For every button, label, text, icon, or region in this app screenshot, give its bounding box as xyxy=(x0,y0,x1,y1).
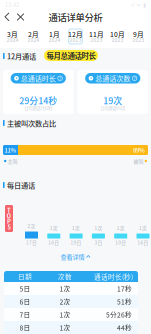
staticText: 2024 xyxy=(6,36,18,43)
staticText: 1次 xyxy=(139,225,147,231)
button[interactable]: 关闭 xyxy=(14,9,27,24)
staticText: 日均通话1分2秒 xyxy=(24,105,52,111)
staticText: 总通话时长 xyxy=(21,73,56,83)
staticText: 19日 xyxy=(71,239,82,246)
staticText: 12月通话 xyxy=(7,51,36,61)
staticText: 3日 xyxy=(94,239,102,246)
staticText: 主叫 xyxy=(6,157,17,165)
staticText: 通话详单分析 xyxy=(48,10,102,24)
staticText: 16日 xyxy=(48,239,59,246)
staticText: 1月 xyxy=(49,29,60,39)
staticText: 19次 xyxy=(103,94,122,107)
staticText: 10月 xyxy=(110,29,125,39)
staticText: 1次 xyxy=(59,323,70,332)
staticText: 2次 xyxy=(59,297,70,306)
staticText: P xyxy=(7,217,11,226)
staticText: 1次 xyxy=(50,225,58,231)
staticText: 1次 xyxy=(59,310,70,319)
staticText: 12月 xyxy=(68,29,83,39)
staticText: 每月总通话时长 xyxy=(46,50,95,61)
staticText: 1次 xyxy=(59,284,70,293)
staticText: 2023 xyxy=(69,36,81,43)
staticText: 次数 xyxy=(58,272,72,281)
staticText: 总通话次数 xyxy=(95,73,130,83)
button[interactable]: 查看详情 xyxy=(0,252,151,261)
staticText: 2024 xyxy=(27,36,39,43)
staticText: 11% xyxy=(4,146,16,154)
staticText: 2023 xyxy=(111,36,123,43)
staticText: 11月 xyxy=(89,29,104,39)
staticText: 2次 xyxy=(27,223,35,229)
button[interactable]: 返回 xyxy=(1,9,13,25)
staticText: 51秒 xyxy=(117,297,132,306)
button[interactable]: 1月 xyxy=(44,25,65,47)
staticText: 3月 xyxy=(7,29,18,39)
staticText: 29分14秒 xyxy=(19,94,57,107)
staticText: 17秒 xyxy=(117,284,132,293)
staticText: ? xyxy=(134,75,136,81)
staticText: 2月 xyxy=(28,29,39,39)
staticText: 7日 xyxy=(19,310,30,319)
staticText: 16日 xyxy=(137,239,148,246)
staticText: 1次 xyxy=(94,225,102,231)
staticText: 1次 xyxy=(72,225,80,231)
staticText: 查看详情 xyxy=(60,252,84,261)
staticText: 2023 xyxy=(132,36,144,43)
staticText: 日期 xyxy=(18,272,32,281)
staticText: 日均通话0.6次 xyxy=(100,105,125,111)
staticText: 17日 xyxy=(26,239,37,246)
staticText: 2024 xyxy=(48,36,60,43)
staticText: 89% xyxy=(133,146,145,154)
staticText: 主被叫次数占比 xyxy=(7,118,56,128)
staticText: 2023 xyxy=(90,36,102,43)
button[interactable]: 10月 xyxy=(107,25,128,47)
staticText: ıl ᯤ ▮ xyxy=(131,0,146,9)
button[interactable]: 3月 xyxy=(2,25,23,47)
staticText: 5日 xyxy=(19,284,30,293)
staticText: 10日 xyxy=(115,239,126,246)
button[interactable]: 11月 xyxy=(86,25,107,47)
staticText: 9月 xyxy=(133,29,144,39)
staticText: 13:42 xyxy=(5,0,19,9)
staticText: 被叫 xyxy=(134,157,145,165)
staticText: O xyxy=(6,211,11,220)
staticText: 44秒 xyxy=(117,323,132,332)
staticText: 8日 xyxy=(19,323,30,332)
staticText: 5分26秒 xyxy=(106,310,132,319)
staticText: T xyxy=(7,206,11,214)
button[interactable]: 9月 xyxy=(128,25,149,47)
staticText: 6日 xyxy=(19,297,30,306)
button[interactable]: 12月 xyxy=(65,25,86,47)
staticText: 每日通话 xyxy=(7,180,35,190)
staticText: 1次 xyxy=(117,225,125,231)
staticText: 5 xyxy=(7,223,10,231)
button[interactable]: 2月 xyxy=(23,25,44,47)
staticText: 通话时长(秒) xyxy=(94,272,133,281)
staticText: ? xyxy=(59,75,61,81)
